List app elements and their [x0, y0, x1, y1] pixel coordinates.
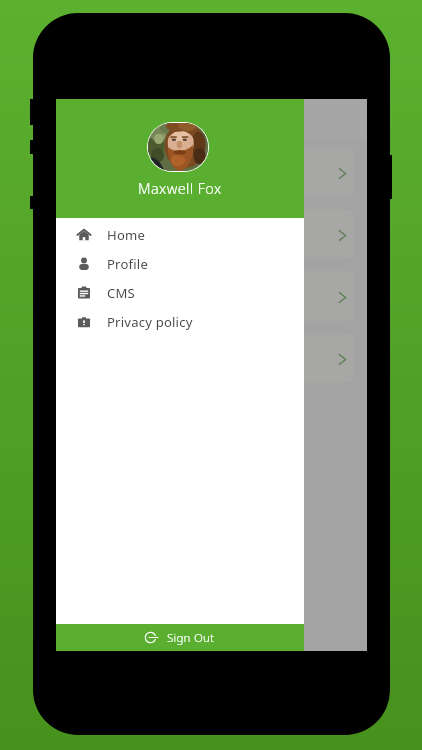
staticText: Sign Out — [167, 630, 215, 646]
button[interactable]: Profile — [56, 249, 304, 278]
staticText: Home — [107, 226, 146, 244]
staticText: CMS — [107, 284, 135, 302]
staticText: Maxwell Fox — [138, 179, 222, 199]
button[interactable]: CMS — [56, 278, 304, 307]
button[interactable] — [69, 209, 354, 259]
staticText: Profile — [107, 255, 149, 273]
button[interactable] — [69, 271, 354, 321]
button[interactable]: Profile photo — [148, 123, 208, 171]
button[interactable] — [69, 147, 354, 197]
button[interactable]: Privacy policy — [56, 307, 304, 336]
button[interactable]: Home — [56, 220, 304, 249]
button[interactable] — [69, 333, 354, 383]
button[interactable]: Sign Out — [56, 624, 304, 651]
staticText: Privacy policy — [107, 313, 193, 331]
